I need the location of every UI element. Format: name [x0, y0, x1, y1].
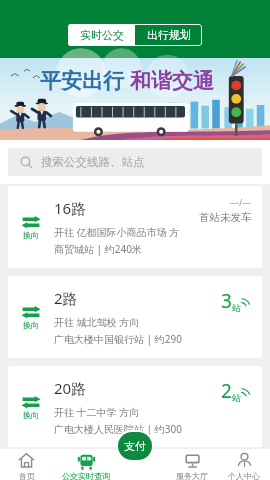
button[interactable]: 首页: [0, 448, 53, 480]
staticText: 平安出行: [40, 68, 124, 94]
staticText: 和谐交通: [130, 68, 214, 94]
staticText: 换向: [23, 410, 39, 420]
staticText: 16路: [54, 198, 87, 218]
button[interactable]: 换向: [8, 186, 262, 268]
staticText: 2: [221, 378, 232, 404]
staticText: 搜索公交线路、站点: [41, 155, 145, 169]
button[interactable]: 实时公交: [68, 24, 135, 46]
staticText: —/—: [230, 196, 252, 208]
staticText: 支付: [124, 439, 146, 453]
staticText: 广电大楼中国银行站 | 约290米: [54, 332, 184, 346]
staticText: 站: [232, 392, 241, 403]
staticText: 出行规划: [147, 28, 191, 42]
staticText: 换向: [23, 230, 39, 240]
button[interactable]: 出行规划: [135, 24, 202, 46]
staticText: 个人中心: [228, 471, 260, 480]
staticText: 商贸城站 | 约240米: [54, 242, 142, 256]
button[interactable]: 换向: [8, 276, 262, 358]
button[interactable]: 服务大厅: [166, 448, 218, 480]
other: 换向: [21, 215, 41, 229]
staticText: 广电大楼人民医院站 | 约300米: [54, 422, 184, 436]
staticText: 首站未发车: [199, 211, 252, 224]
staticText: 实时公交: [80, 28, 124, 42]
staticText: 开往 十二中学 方向: [54, 405, 140, 419]
staticText: 开往 城北驾校 方向: [54, 315, 140, 329]
button[interactable]: 公交实时查询: [53, 448, 119, 480]
staticText: 3: [221, 288, 232, 314]
staticText: 换向: [23, 320, 39, 330]
staticText: 站: [232, 302, 241, 313]
button[interactable]: 支付: [118, 432, 152, 460]
staticText: 20路: [54, 378, 87, 398]
button[interactable]: 换向: [8, 366, 262, 448]
staticText: 首页: [19, 471, 35, 480]
button[interactable]: 搜索公交线路、站点: [8, 148, 262, 176]
button[interactable]: 个人中心: [218, 448, 270, 480]
other: 换向: [21, 395, 41, 409]
staticText: 开往 亿都国际小商品市场 方向: [54, 225, 184, 239]
staticText: 2路: [54, 288, 78, 308]
staticText: 服务大厅: [176, 471, 208, 480]
other: 换向: [21, 305, 41, 319]
staticText: 公交实时查询: [62, 471, 110, 480]
